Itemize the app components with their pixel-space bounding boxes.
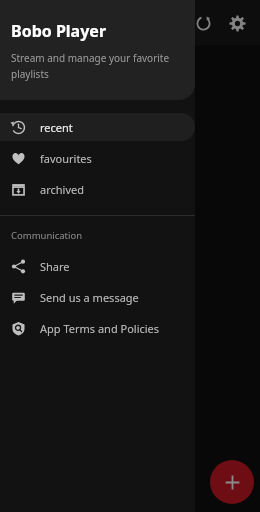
staticText: Stream and manage your favorite playlist… bbox=[11, 51, 181, 80]
button[interactable]: recent bbox=[0, 113, 195, 141]
button[interactable]: Add playlist bbox=[210, 460, 254, 504]
button[interactable]: favourites bbox=[0, 144, 195, 172]
staticText: App Terms and Policies bbox=[40, 321, 160, 336]
staticText: recent bbox=[40, 120, 73, 135]
button[interactable]: Send us a message bbox=[0, 283, 195, 311]
staticText: favourites bbox=[40, 151, 92, 166]
staticText: Bobo Player bbox=[11, 20, 107, 42]
button[interactable]: Settings bbox=[220, 6, 254, 40]
button[interactable]: Refresh bbox=[186, 6, 220, 40]
staticText: archived bbox=[40, 182, 84, 197]
button[interactable]: Share bbox=[0, 252, 195, 280]
button[interactable]: archived bbox=[0, 175, 195, 203]
staticText: Send us a message bbox=[40, 290, 139, 305]
button[interactable]: App Terms and Policies bbox=[0, 314, 195, 342]
staticText: Communication bbox=[11, 229, 83, 242]
staticText: Share bbox=[40, 259, 70, 274]
